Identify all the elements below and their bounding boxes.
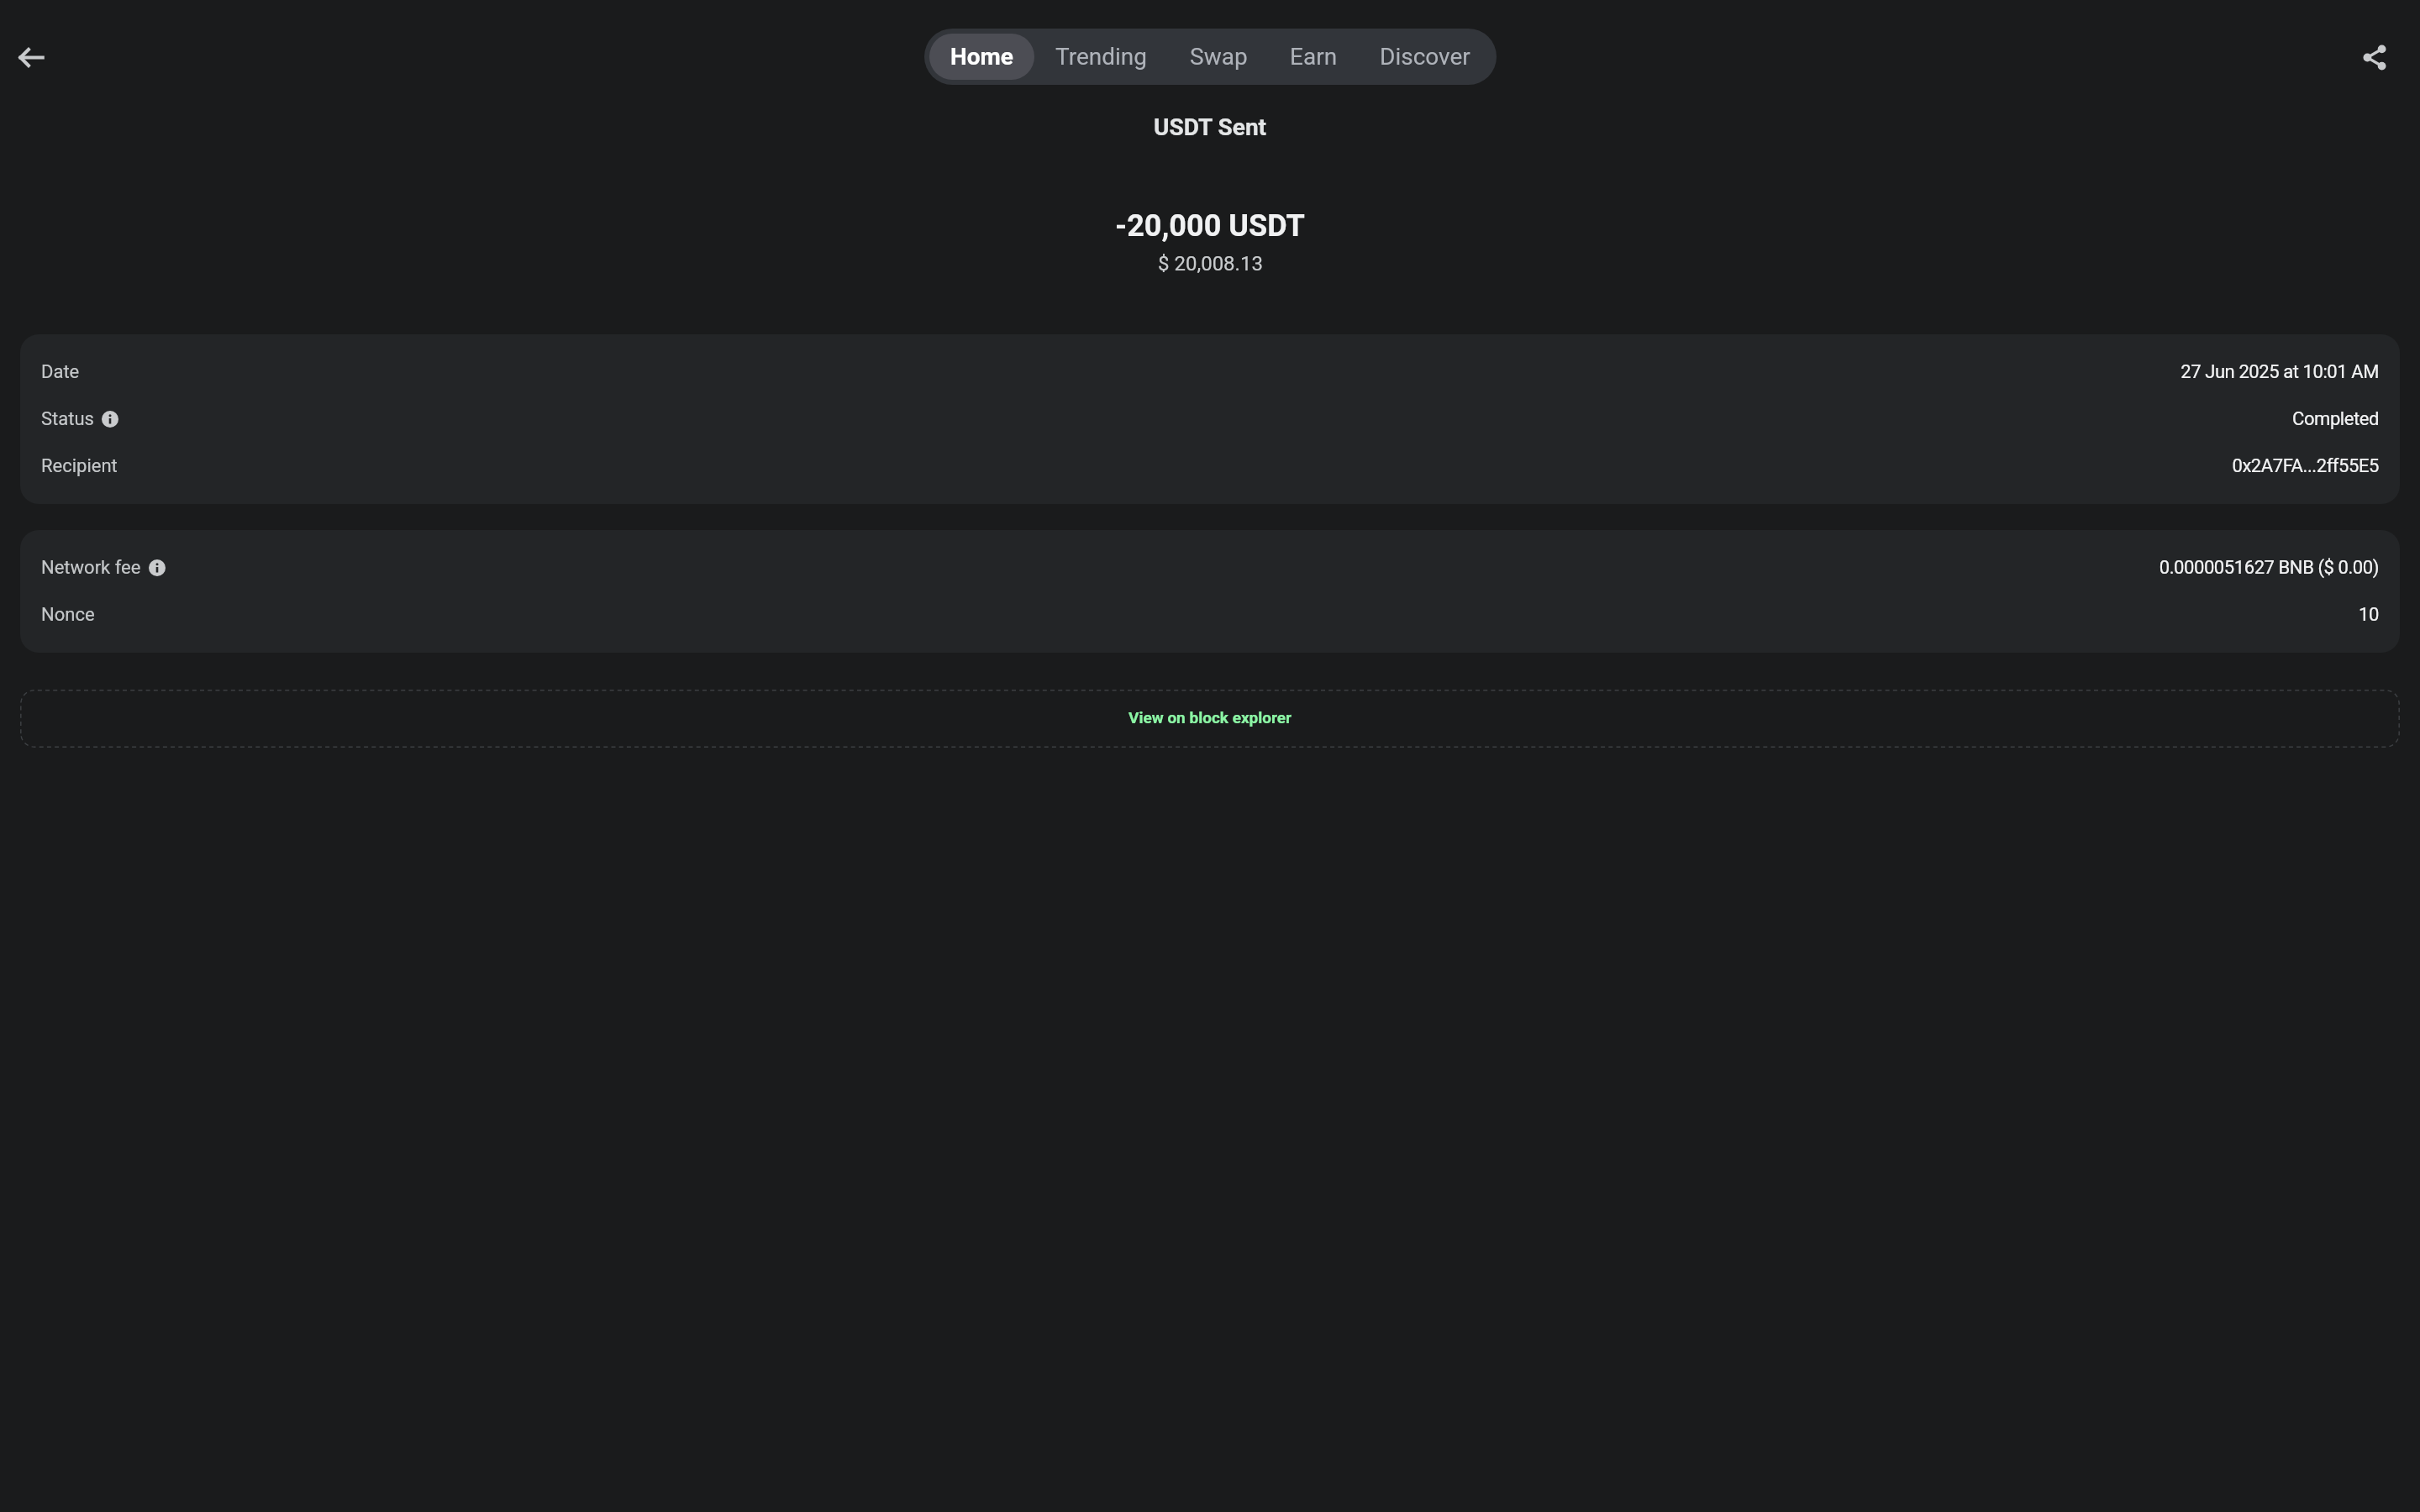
staticText: Swap — [1190, 43, 1248, 71]
staticText: View on block explorer — [1128, 708, 1292, 727]
staticText: Nonce — [41, 604, 95, 626]
staticText: Earn — [1290, 43, 1338, 71]
button[interactable]: Discover — [1359, 34, 1491, 80]
button[interactable]: Swap — [1169, 34, 1269, 80]
staticText: Network fee — [41, 557, 141, 579]
staticText: Date — [41, 361, 80, 383]
staticText: $ 20,008.13 — [1158, 252, 1263, 276]
staticText: Completed — [122, 408, 2379, 430]
staticText: USDT Sent — [1154, 113, 1267, 141]
button[interactable]: Share — [2351, 34, 2398, 81]
staticText: -20,000 USDT — [1115, 208, 1305, 244]
staticText: Status — [41, 408, 94, 430]
button[interactable]: Back — [8, 34, 55, 81]
staticText: 0.0000051627 BNB ($ 0.00) — [169, 557, 2379, 579]
button[interactable]: Earn — [1269, 34, 1359, 80]
staticText: Discover — [1380, 43, 1470, 71]
staticText: 0x2A7FA...2ff55E5 — [121, 455, 2379, 477]
staticText: 10 — [98, 604, 2379, 626]
button[interactable]: Home — [929, 34, 1034, 80]
staticText: 27 Jun 2025 at 10:01 AM — [83, 361, 2379, 383]
button[interactable]: Trending — [1034, 34, 1169, 80]
button[interactable]: View on block explorer — [20, 690, 2400, 748]
staticText: Home — [950, 43, 1013, 71]
staticText: Trending — [1055, 43, 1148, 71]
staticText: Recipient — [41, 455, 118, 477]
